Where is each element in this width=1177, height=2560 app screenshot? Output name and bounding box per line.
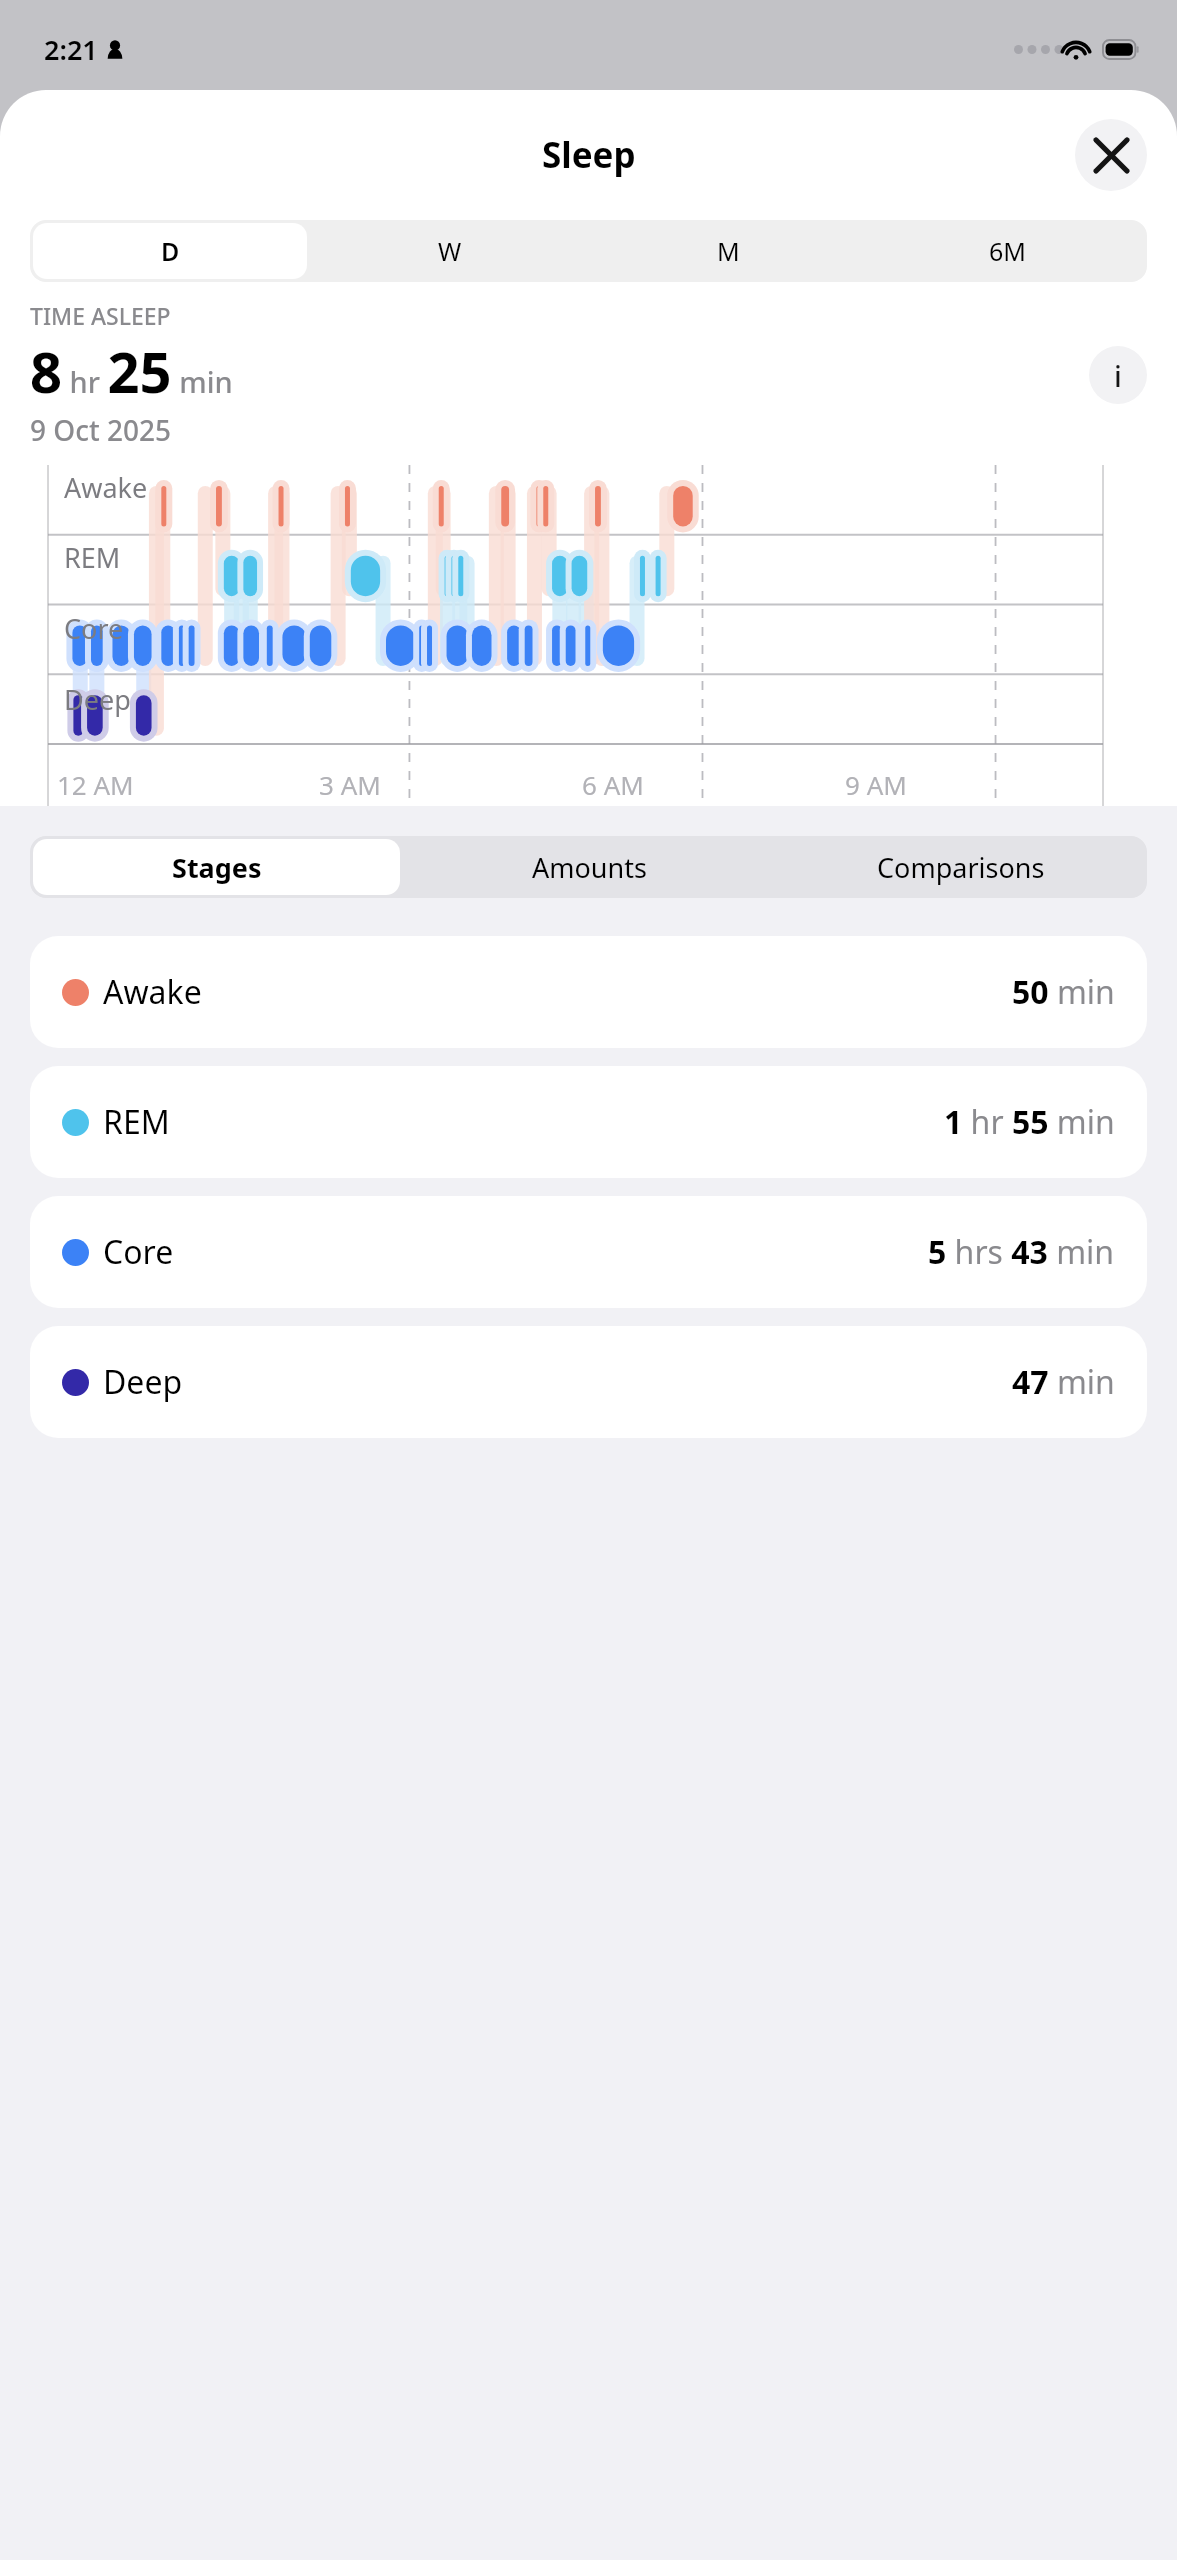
staticText: 50 min: [1012, 970, 1115, 1014]
button[interactable]: Stages: [33, 839, 400, 895]
staticText: 2:21: [44, 31, 98, 68]
staticText: W: [438, 234, 462, 268]
staticText: 9 AM: [845, 767, 907, 802]
staticText: Amounts: [532, 849, 647, 886]
button[interactable]: Core: [30, 1196, 1147, 1308]
button[interactable]: REM: [30, 1066, 1147, 1178]
staticText: 9 Oct 2025: [30, 411, 172, 449]
staticText: Core: [103, 1230, 174, 1274]
staticText: 6 AM: [582, 767, 644, 802]
button[interactable]: Awake: [30, 936, 1147, 1048]
button[interactable]: W: [313, 223, 586, 279]
staticText: 5 hrs 43 min: [928, 1230, 1115, 1274]
staticText: M: [717, 234, 740, 268]
staticText: Stages: [172, 849, 262, 886]
button[interactable]: Deep: [30, 1326, 1147, 1438]
button[interactable]: Info: [1089, 346, 1147, 404]
staticText: Sleep: [542, 131, 636, 179]
staticText: Deep: [64, 681, 131, 718]
staticText: Deep: [103, 1360, 183, 1404]
button[interactable]: 6M: [871, 223, 1144, 279]
staticText: Core: [64, 610, 124, 647]
staticText: Comparisons: [877, 849, 1045, 886]
button[interactable]: Amounts: [406, 839, 772, 895]
staticText: D: [161, 234, 180, 268]
staticText: 8 hr 25 min: [30, 333, 233, 409]
staticText: i: [1114, 356, 1122, 395]
staticText: 3 AM: [319, 767, 381, 802]
button[interactable]: M: [592, 223, 865, 279]
staticText: 12 AM: [57, 767, 134, 802]
staticText: 1 hr 55 min: [944, 1100, 1115, 1144]
staticText: 47 min: [1012, 1360, 1115, 1404]
staticText: REM: [64, 539, 121, 576]
staticText: REM: [103, 1100, 170, 1144]
staticText: 6M: [989, 234, 1026, 268]
button[interactable]: Close: [1075, 119, 1147, 191]
staticText: Awake: [64, 469, 148, 506]
button[interactable]: D: [33, 223, 307, 279]
staticText: Awake: [103, 970, 202, 1014]
button[interactable]: Comparisons: [778, 839, 1144, 895]
staticText: TIME ASLEEP: [30, 300, 171, 331]
